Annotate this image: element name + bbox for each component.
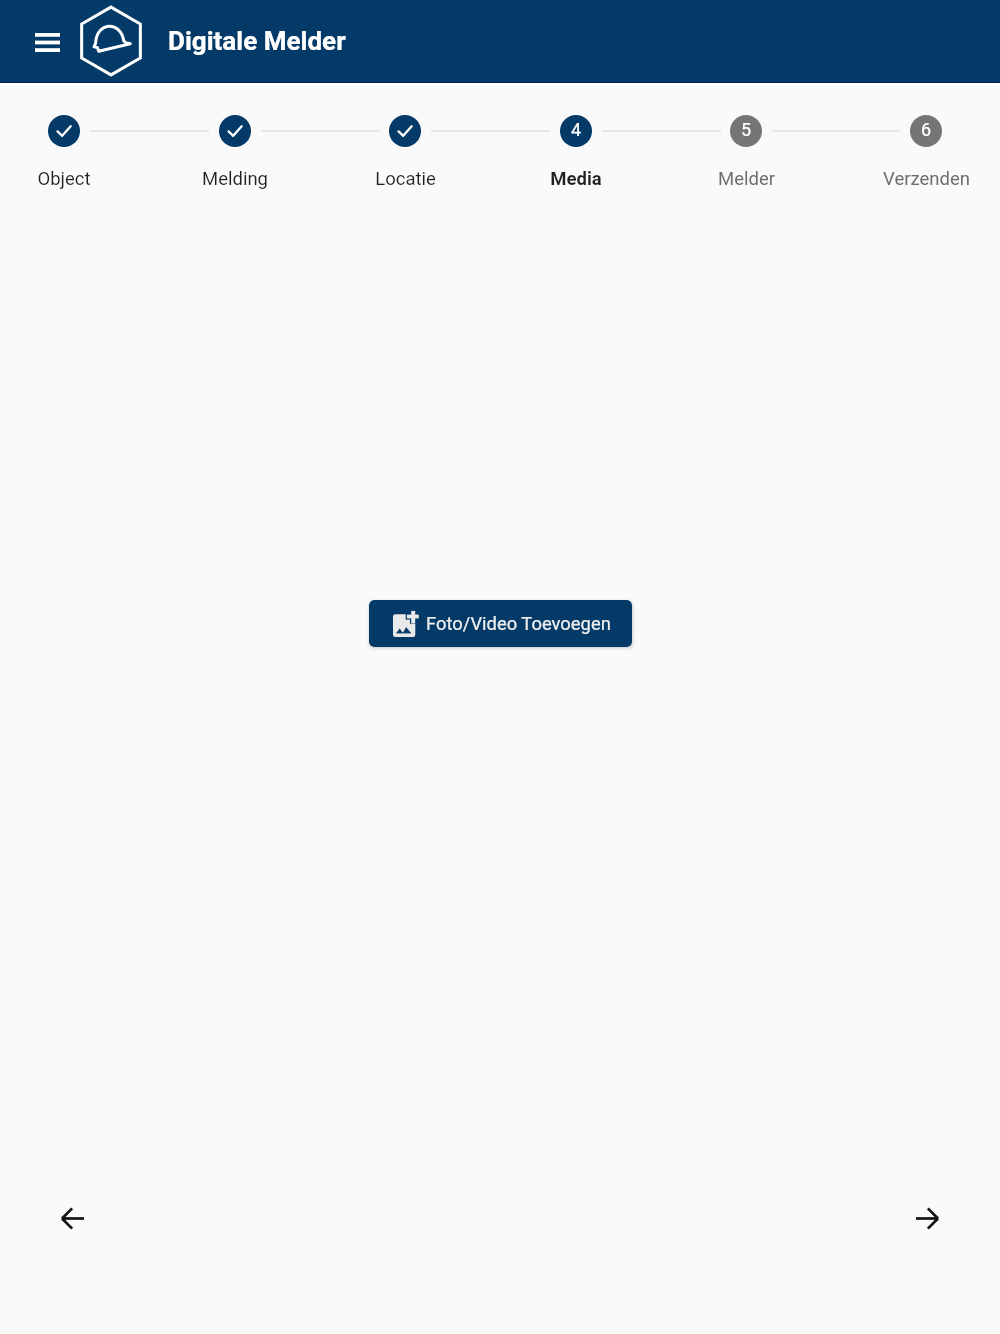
button[interactable]: Foto/Video Toevoegen xyxy=(369,600,632,647)
button[interactable]: Menu xyxy=(23,17,71,65)
button[interactable]: Locatie xyxy=(335,115,475,190)
staticText: 5 xyxy=(741,119,752,140)
staticText: Object xyxy=(37,168,91,190)
staticText: Verzenden xyxy=(883,168,970,190)
staticText: Melding xyxy=(202,168,268,190)
staticText: Media xyxy=(550,168,602,190)
button[interactable]: Object xyxy=(0,115,134,190)
staticText: Digitale Melder xyxy=(168,26,346,56)
button[interactable]: 6 xyxy=(856,115,996,190)
staticText: Melder xyxy=(718,168,775,190)
button[interactable]: Next xyxy=(895,1186,959,1250)
button[interactable]: 5 xyxy=(676,115,816,190)
button[interactable]: 4 xyxy=(506,115,646,190)
button[interactable]: Back xyxy=(41,1186,105,1250)
button[interactable]: Melding xyxy=(165,115,305,190)
staticText: Foto/Video Toevoegen xyxy=(426,613,611,635)
staticText: 4 xyxy=(571,119,582,140)
staticText: Locatie xyxy=(375,168,436,190)
staticText: 6 xyxy=(921,119,932,140)
